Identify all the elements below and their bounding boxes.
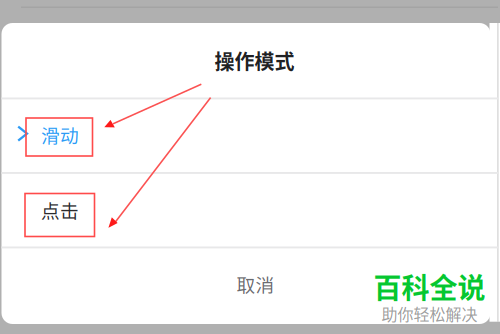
button[interactable]: 点击 xyxy=(1,172,498,246)
button[interactable]: 取消 xyxy=(1,246,498,322)
staticText: 滑动 xyxy=(41,121,79,148)
staticText: 助你轻松解决 xyxy=(381,302,477,325)
staticText: 百科全说 xyxy=(373,266,485,306)
button[interactable]: 滑动 xyxy=(1,97,498,172)
staticText: 取消 xyxy=(236,270,274,297)
staticText: 点击 xyxy=(41,196,79,223)
staticText: 操作模式 xyxy=(214,46,294,75)
